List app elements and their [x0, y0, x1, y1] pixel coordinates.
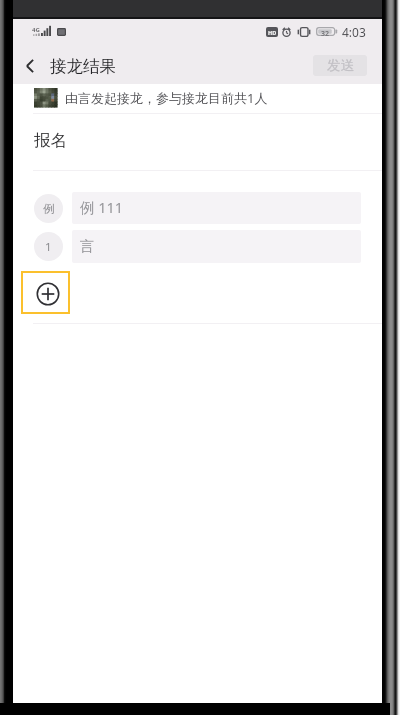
staticText: 4G [32, 26, 40, 34]
staticText: 言 [80, 237, 95, 255]
staticText: 1 [45, 239, 52, 255]
button[interactable]: 发送 [313, 55, 367, 76]
staticText: 4:03 [342, 24, 366, 40]
staticText: 接龙结果 [50, 56, 116, 77]
staticText: HD [268, 29, 277, 36]
button[interactable]: 1 [13, 226, 382, 267]
staticText: 32 [321, 29, 330, 39]
staticText: 报名 [34, 130, 67, 151]
button[interactable]: Back [13, 49, 47, 83]
staticText: 例 111 [80, 197, 124, 217]
button[interactable]: 例 [13, 188, 382, 228]
button[interactable]: Add item [21, 271, 70, 314]
staticText: 例 [43, 202, 55, 216]
staticText: 由言发起接龙，参与接龙目前共1人 [65, 89, 268, 107]
staticText: 发送 [327, 57, 354, 74]
